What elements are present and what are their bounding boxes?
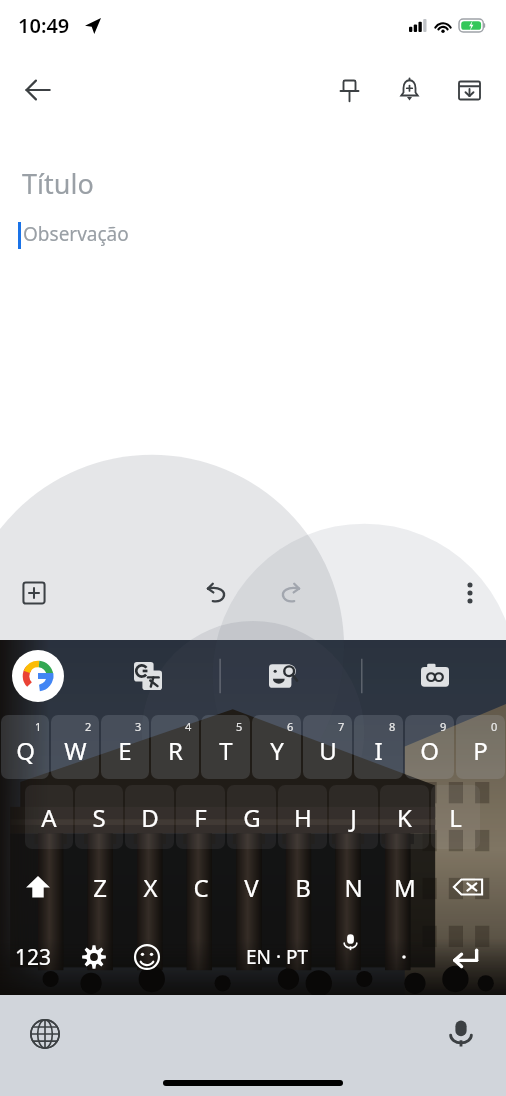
button[interactable]: S bbox=[75, 785, 123, 849]
staticText: 5 bbox=[236, 719, 243, 734]
staticText: J bbox=[350, 801, 357, 834]
button[interactable]: Enter bbox=[426, 922, 506, 992]
button[interactable]: V bbox=[227, 855, 276, 919]
staticText: U bbox=[319, 734, 337, 767]
staticText: 0 bbox=[491, 719, 498, 734]
staticText: 6 bbox=[287, 719, 294, 734]
button[interactable]: Numbers bbox=[0, 922, 67, 992]
button[interactable]: P bbox=[456, 715, 505, 779]
button[interactable]: A bbox=[25, 785, 73, 849]
staticText: M bbox=[394, 871, 416, 904]
staticText: L bbox=[449, 801, 462, 834]
staticText: B bbox=[295, 871, 311, 904]
staticText: D bbox=[141, 801, 159, 834]
staticText: Z bbox=[93, 871, 107, 904]
button[interactable]: G bbox=[227, 785, 276, 849]
staticText: H bbox=[294, 801, 312, 834]
button[interactable]: M bbox=[380, 855, 429, 919]
button[interactable]: Shift bbox=[1, 855, 74, 919]
button[interactable]: Add reminder bbox=[386, 67, 432, 113]
button[interactable]: Q bbox=[1, 715, 49, 779]
button[interactable]: H bbox=[278, 785, 327, 849]
button[interactable]: U bbox=[303, 715, 352, 779]
button[interactable]: J bbox=[329, 785, 378, 849]
button[interactable]: Space bbox=[173, 922, 381, 992]
button[interactable]: C bbox=[176, 855, 225, 919]
staticText: E bbox=[118, 734, 132, 767]
button[interactable]: O bbox=[405, 715, 454, 779]
staticText: G bbox=[243, 801, 261, 834]
staticText: S bbox=[92, 801, 106, 834]
staticText: 4 bbox=[185, 719, 192, 734]
button[interactable]: Y bbox=[252, 715, 301, 779]
staticText: 7 bbox=[338, 719, 345, 734]
button[interactable]: Google bbox=[12, 650, 64, 702]
button[interactable]: B bbox=[278, 855, 327, 919]
button[interactable]: Add bbox=[10, 569, 58, 617]
button[interactable]: Z bbox=[76, 855, 124, 919]
button[interactable]: E bbox=[101, 715, 149, 779]
button[interactable]: Redo bbox=[264, 566, 318, 620]
staticText: 10:49 bbox=[18, 12, 70, 39]
staticText: Q bbox=[16, 734, 35, 767]
button[interactable]: Back bbox=[12, 64, 64, 116]
button[interactable]: X bbox=[126, 855, 174, 919]
button[interactable]: W bbox=[51, 715, 99, 779]
button[interactable]: N bbox=[329, 855, 378, 919]
staticText: X bbox=[143, 871, 158, 904]
staticText: 9 bbox=[440, 719, 447, 734]
staticText: F bbox=[194, 801, 207, 834]
button[interactable]: Archive bbox=[446, 67, 492, 113]
staticText: O bbox=[420, 734, 439, 767]
staticText: T bbox=[219, 734, 233, 767]
staticText: Y bbox=[270, 734, 284, 767]
button[interactable]: L bbox=[431, 785, 480, 849]
staticText: 2 bbox=[85, 719, 92, 734]
button[interactable]: Emoji bbox=[120, 922, 173, 992]
button[interactable]: Search stickers bbox=[260, 653, 306, 699]
button[interactable]: Settings bbox=[67, 922, 120, 992]
staticText: R bbox=[168, 734, 183, 767]
button[interactable]: Título bbox=[0, 158, 506, 208]
staticText: 8 bbox=[389, 719, 396, 734]
button[interactable]: Observação bbox=[0, 213, 506, 545]
staticText: EN · PT bbox=[246, 944, 309, 970]
staticText: P bbox=[473, 734, 488, 767]
button[interactable]: I bbox=[354, 715, 403, 779]
staticText: Observação bbox=[23, 221, 129, 247]
staticText: Título bbox=[22, 165, 94, 202]
button[interactable]: T bbox=[201, 715, 250, 779]
staticText: W bbox=[64, 734, 87, 767]
staticText: C bbox=[193, 871, 209, 904]
staticText: I bbox=[374, 734, 383, 767]
staticText: 1 bbox=[35, 719, 42, 734]
button[interactable]: GIF camera bbox=[412, 653, 458, 699]
button[interactable]: More options bbox=[446, 569, 494, 617]
button[interactable]: Period bbox=[381, 922, 426, 992]
button[interactable]: F bbox=[176, 785, 225, 849]
button[interactable]: Pin note bbox=[326, 67, 372, 113]
staticText: V bbox=[244, 871, 259, 904]
button[interactable]: Translate bbox=[125, 653, 171, 699]
button[interactable]: Undo bbox=[188, 566, 242, 620]
button[interactable]: K bbox=[380, 785, 429, 849]
button[interactable]: Backspace bbox=[431, 855, 505, 919]
button[interactable]: D bbox=[125, 785, 174, 849]
button[interactable]: Dictation bbox=[436, 1009, 486, 1059]
staticText: 123 bbox=[15, 943, 52, 972]
button[interactable]: R bbox=[151, 715, 199, 779]
staticText: K bbox=[397, 801, 412, 834]
button[interactable]: Change keyboard bbox=[20, 1009, 70, 1059]
staticText: N bbox=[344, 871, 363, 904]
staticText: 3 bbox=[135, 719, 142, 734]
staticText: A bbox=[41, 801, 57, 834]
